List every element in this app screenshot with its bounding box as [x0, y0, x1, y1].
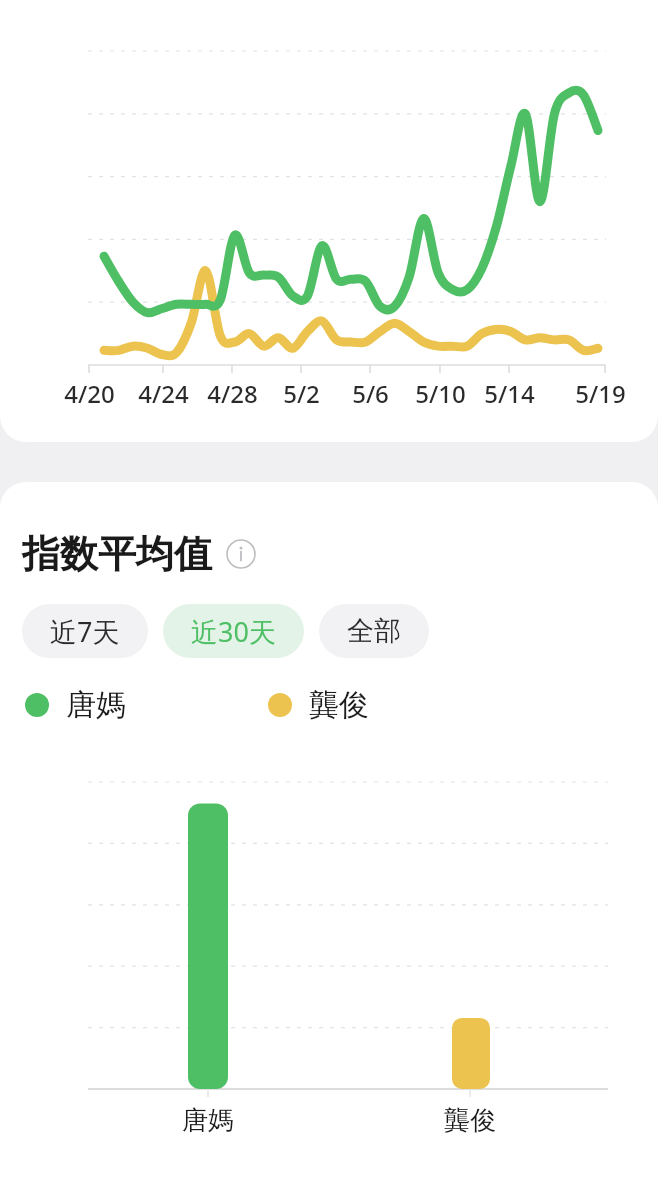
- staticText: 4/20: [64, 377, 115, 410]
- staticText: 唐媽: [182, 1104, 234, 1137]
- staticText: 5/14: [484, 377, 535, 410]
- staticText: 5/6: [352, 377, 389, 410]
- staticText: 近30天: [191, 613, 276, 650]
- button[interactable]: 唐媽: [25, 686, 126, 724]
- button[interactable]: 全部: [319, 604, 429, 658]
- staticText: 5/19: [575, 377, 626, 410]
- staticText: 5/2: [283, 377, 320, 410]
- staticText: 龔俊: [309, 686, 369, 724]
- button[interactable]: 近30天: [163, 604, 304, 658]
- button[interactable]: 近7天: [22, 604, 148, 658]
- staticText: 4/24: [138, 377, 189, 410]
- staticText: 近7天: [50, 613, 120, 650]
- button[interactable]: 说明: [226, 539, 256, 569]
- staticText: 4/28: [207, 377, 258, 410]
- staticText: 指数平均值: [22, 530, 212, 578]
- staticText: 唐媽: [66, 686, 126, 724]
- button[interactable]: 龔俊: [268, 686, 369, 724]
- staticText: 龔俊: [444, 1104, 496, 1137]
- staticText: 5/10: [415, 377, 466, 410]
- staticText: 全部: [347, 614, 401, 648]
